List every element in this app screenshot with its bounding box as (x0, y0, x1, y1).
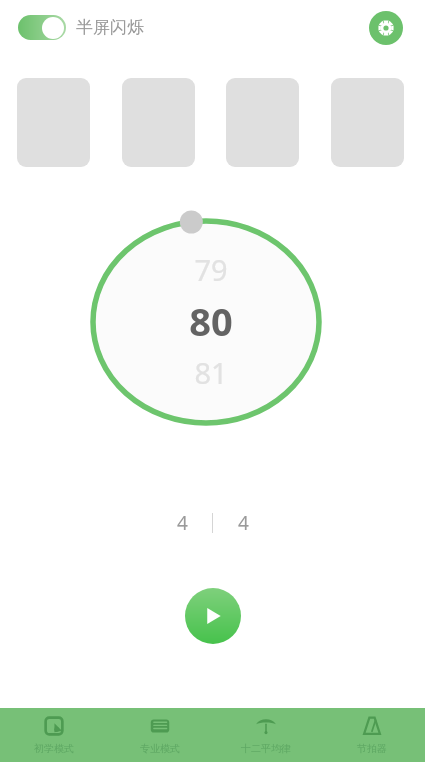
staticText: 十二平均律 (241, 742, 291, 755)
staticText: 79 (194, 250, 228, 289)
button[interactable]: Tempo dial (86, 208, 336, 434)
button[interactable]: 4 (152, 510, 212, 536)
button[interactable]: Play (185, 588, 241, 644)
staticText: 80 (189, 295, 233, 347)
button[interactable]: Beat slot (17, 78, 90, 167)
button[interactable]: Beat slot (226, 78, 299, 167)
staticText: 半屏闪烁 (76, 17, 144, 38)
staticText: 专业模式 (140, 742, 180, 755)
button[interactable]: 半屏闪烁 (18, 15, 144, 40)
button[interactable]: 4 (213, 510, 273, 536)
button[interactable]: 初学模式 (0, 708, 107, 762)
button[interactable]: Beat slot (331, 78, 404, 167)
staticText: 节拍器 (357, 742, 387, 755)
staticText: 4 (177, 510, 188, 536)
button[interactable]: Beat slot (122, 78, 195, 167)
staticText: 4 (238, 510, 249, 536)
button[interactable]: 十二平均律 (213, 708, 319, 762)
staticText: 81 (194, 353, 228, 392)
button[interactable]: Settings (369, 11, 403, 45)
button[interactable]: 节拍器 (319, 708, 425, 762)
staticText: 初学模式 (34, 742, 74, 755)
button[interactable]: 专业模式 (107, 708, 213, 762)
